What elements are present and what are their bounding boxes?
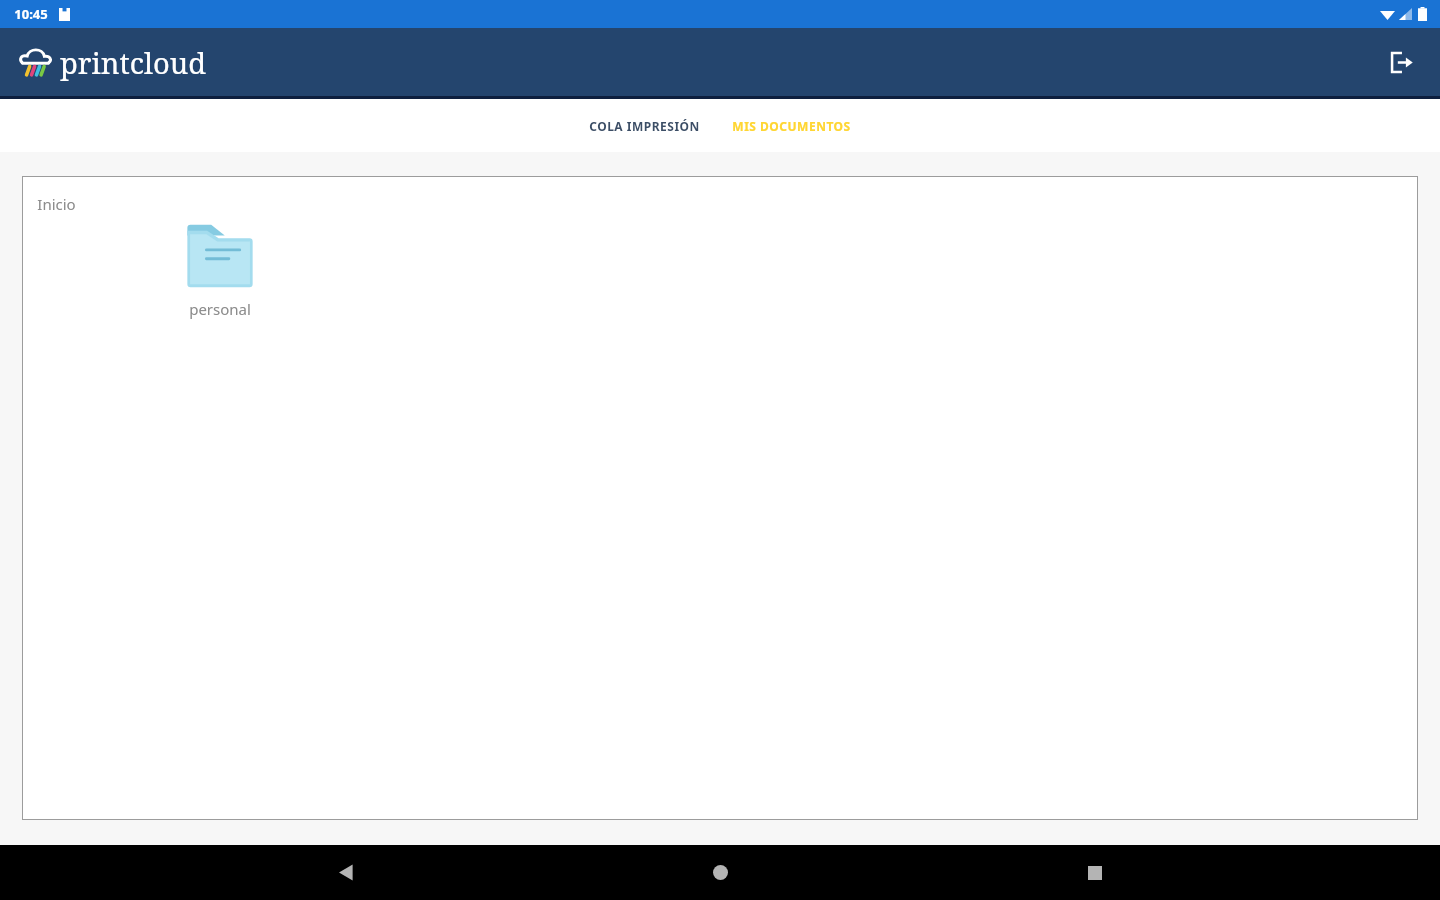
button[interactable]: Inicio (691, 845, 749, 900)
button[interactable]: MIS DOCUMENTOS (718, 107, 865, 145)
button[interactable]: personal (161, 222, 279, 319)
staticText: COLA IMPRESIÓN (589, 118, 700, 134)
button[interactable]: Recientes (1066, 845, 1124, 900)
staticText: printcloud (60, 43, 206, 82)
staticText: 10:45 (14, 5, 48, 23)
staticText: Inicio (37, 194, 76, 214)
button[interactable]: COLA IMPRESIÓN (575, 107, 714, 145)
staticText: MIS DOCUMENTOS (732, 118, 851, 134)
staticText: personal (189, 299, 251, 319)
button[interactable]: Atrás (317, 845, 375, 900)
button[interactable]: Cerrar sesión (1379, 40, 1423, 84)
